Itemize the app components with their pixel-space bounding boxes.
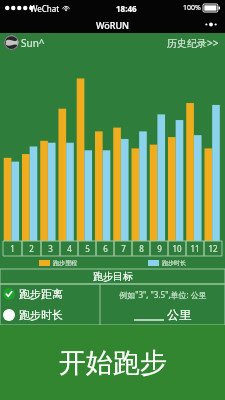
button[interactable]: 跑步时长 bbox=[0, 304, 100, 325]
staticText: 跑步目标 bbox=[93, 270, 133, 283]
button[interactable]: 历史纪录>> bbox=[165, 34, 221, 52]
staticText: 跑步时长 bbox=[162, 259, 186, 267]
staticText: Sun^ bbox=[21, 36, 45, 50]
staticText: 18:46 bbox=[116, 3, 137, 14]
staticText: 11 bbox=[190, 243, 200, 254]
staticText: 例如"3", "3.5",单位: 公里 bbox=[119, 289, 207, 300]
staticText: WöRUN bbox=[96, 19, 130, 31]
staticText: 跑步距离 bbox=[19, 287, 63, 301]
staticText: 9 bbox=[157, 243, 162, 254]
staticText: 8 bbox=[139, 243, 144, 254]
staticText: 100% bbox=[183, 3, 201, 13]
staticText: 公里 bbox=[167, 307, 191, 322]
button[interactable]: 例如"3", "3.5",单位: 公里 bbox=[100, 284, 225, 325]
staticText: 开始跑步 bbox=[59, 346, 167, 380]
staticText: 2 bbox=[29, 243, 34, 254]
staticText: 10 bbox=[172, 243, 182, 254]
staticText: 历史纪录>> bbox=[167, 36, 219, 50]
staticText: 6 bbox=[103, 243, 108, 254]
staticText: 12 bbox=[208, 243, 218, 254]
staticText: 跑步里程 bbox=[53, 259, 77, 267]
button[interactable]: 开始跑步 bbox=[0, 325, 225, 400]
staticText: 1 bbox=[10, 243, 15, 254]
staticText: 跑步时长 bbox=[19, 308, 63, 322]
staticText: 7 bbox=[121, 243, 126, 254]
button[interactable]: More options bbox=[202, 17, 220, 32]
staticText: WeChat bbox=[30, 3, 60, 14]
button[interactable]: Sun^ bbox=[4, 35, 49, 50]
staticText: 4 bbox=[67, 243, 72, 254]
button[interactable]: 跑步距离 bbox=[0, 284, 100, 304]
staticText: 3 bbox=[48, 243, 53, 254]
staticText: 5 bbox=[85, 243, 90, 254]
